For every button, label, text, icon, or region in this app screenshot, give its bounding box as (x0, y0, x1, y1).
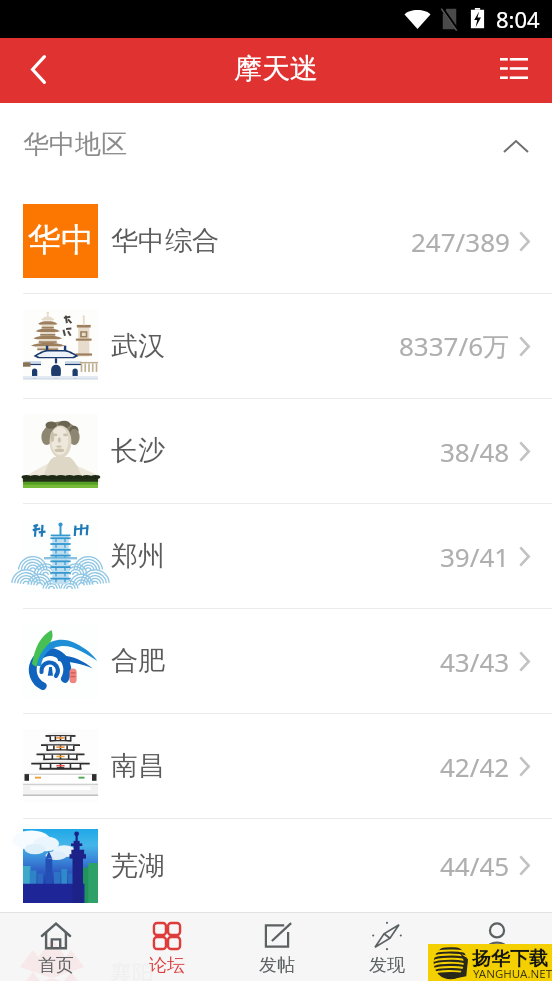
staticText: 39/41 (440, 539, 510, 574)
staticText: 华中地区 (23, 128, 127, 161)
button[interactable]: 论坛 (111, 912, 222, 981)
button[interactable]: 华中地区 (0, 103, 552, 189)
button[interactable]: Back (0, 38, 76, 103)
button[interactable]: 南昌 (0, 714, 552, 818)
button[interactable]: List view (476, 38, 552, 103)
button[interactable]: 发现 (332, 912, 442, 981)
staticText: 8337/6万 (399, 328, 510, 364)
staticText: 扬华下载 (472, 947, 548, 971)
staticText: 247/389 (411, 224, 510, 259)
staticText: 43/43 (440, 644, 510, 679)
staticText: 38/48 (440, 434, 510, 469)
button[interactable]: 武汉 (0, 294, 552, 398)
staticText: 长沙 (111, 434, 165, 468)
staticText: 郑州 (111, 539, 165, 573)
staticText: 我的 (479, 954, 515, 977)
staticText: YANGHUA.NET (473, 966, 552, 981)
other: Collapse (494, 124, 538, 168)
button[interactable]: 发帖 (222, 912, 332, 981)
staticText: 合肥 (111, 644, 165, 678)
staticText: 芜湖 (111, 849, 165, 883)
staticText: 武汉 (111, 329, 165, 363)
button[interactable]: 首页 (0, 912, 111, 981)
button[interactable]: 芜湖 (0, 819, 552, 912)
staticText: 发现 (369, 954, 405, 977)
button[interactable]: 郑州 (0, 504, 552, 608)
staticText: 南昌 (111, 749, 165, 783)
staticText: 摩天迷 (234, 51, 318, 86)
staticText: 华中 (28, 219, 94, 261)
button[interactable]: 华中 (0, 189, 552, 293)
staticText: 华中综合 (111, 224, 219, 258)
staticText: 8:04 (496, 4, 540, 34)
staticText: 44/45 (440, 848, 510, 883)
staticText: 首页 (38, 954, 74, 977)
button[interactable]: 长沙 (0, 399, 552, 503)
staticText: 论坛 (149, 954, 185, 977)
staticText: 发帖 (259, 954, 295, 977)
staticText: 襄阳 (110, 960, 154, 981)
staticText: 42/42 (440, 749, 510, 784)
button[interactable]: 合肥 (0, 609, 552, 713)
button[interactable]: 我的 (442, 912, 552, 981)
